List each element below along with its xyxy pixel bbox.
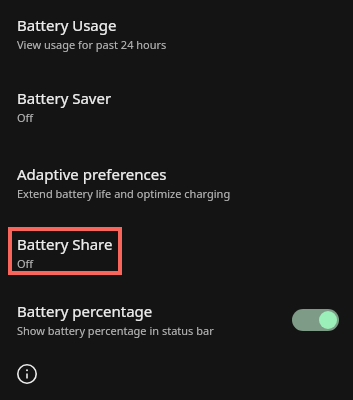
staticText: Battery Share [17, 234, 113, 254]
staticText: View usage for past 24 hours [17, 37, 167, 52]
staticText: Battery Usage [17, 15, 117, 35]
button[interactable]: Information [14, 361, 40, 387]
staticText: Extend battery life and optimize chargin… [17, 186, 231, 201]
button[interactable]: Adaptive preferences [0, 158, 353, 207]
button[interactable]: Battery Usage [0, 9, 353, 58]
button[interactable]: Battery Saver [0, 82, 353, 131]
staticText: Show battery percentage in status bar [17, 323, 214, 338]
staticText: Adaptive preferences [17, 164, 167, 184]
staticText: Off [17, 256, 34, 271]
button[interactable]: Battery percentage toggle [289, 306, 341, 334]
staticText: Battery percentage [17, 301, 153, 321]
staticText: Battery Saver [17, 88, 112, 108]
staticText: Off [17, 110, 34, 125]
button[interactable]: Battery percentage [0, 295, 353, 344]
button[interactable]: Battery Share [8, 227, 122, 275]
